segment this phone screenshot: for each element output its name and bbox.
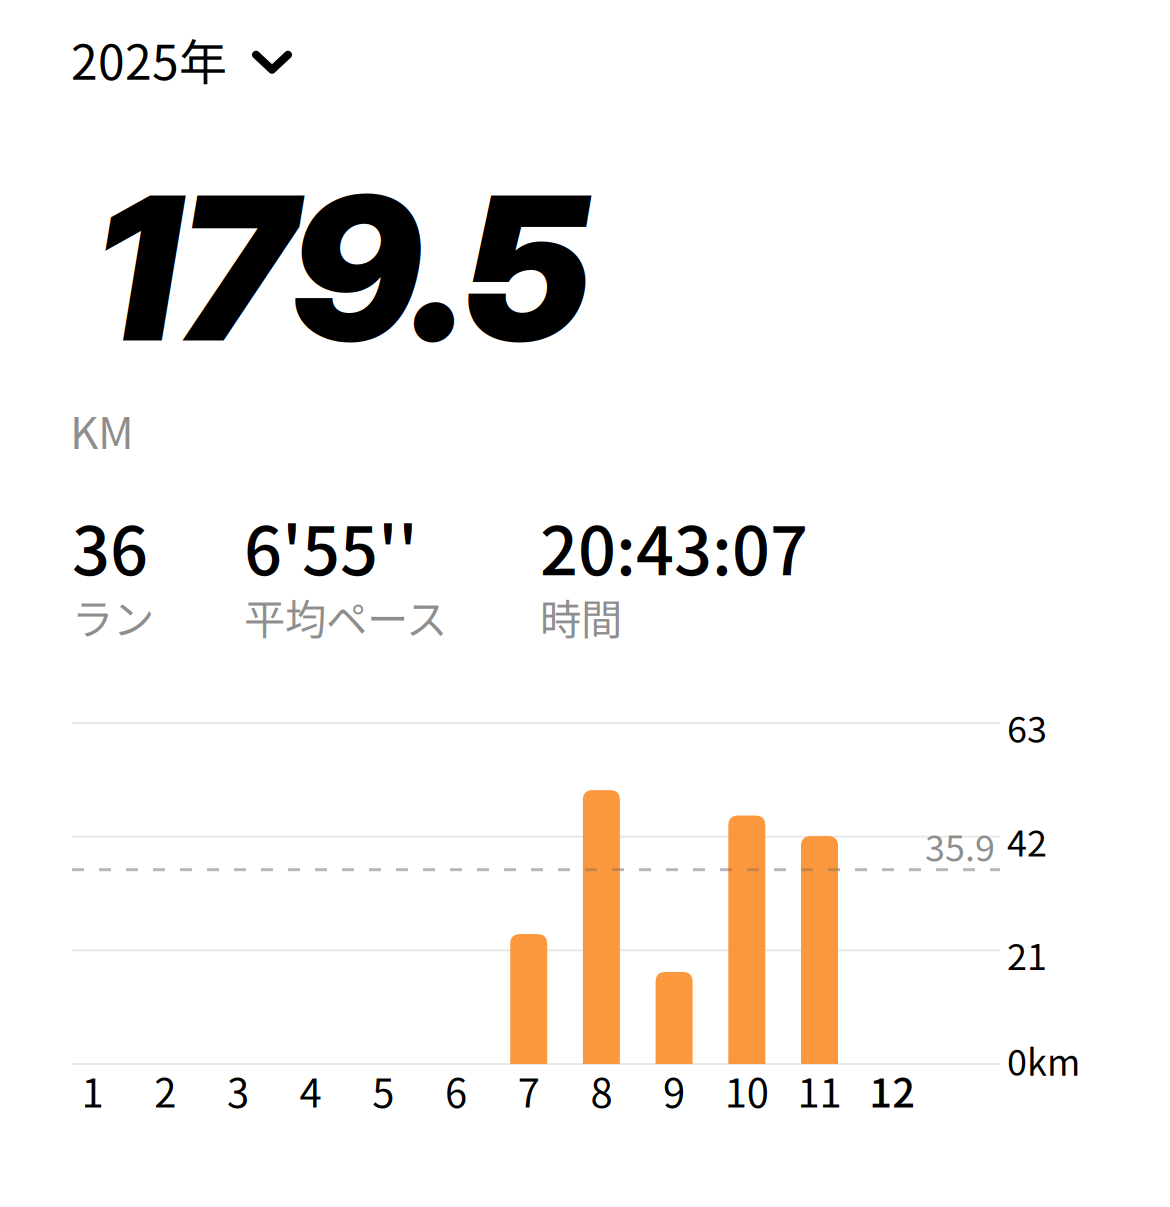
staticText: 63 (1007, 701, 1047, 753)
staticText: 2025年 (71, 24, 227, 93)
staticText: 5 (372, 1061, 394, 1119)
staticText: 7 (518, 1061, 540, 1119)
staticText: 1 (81, 1061, 103, 1119)
staticText: 36 (72, 498, 148, 594)
staticText: 3 (227, 1061, 249, 1119)
staticText: 0km (1007, 1034, 1080, 1086)
staticText: 11 (797, 1061, 841, 1119)
staticText: 4 (300, 1061, 322, 1119)
staticText: 6'55'' (244, 498, 418, 594)
staticText: 21 (1007, 928, 1047, 980)
staticText: 6 (445, 1061, 467, 1119)
staticText: 12 (869, 1061, 915, 1119)
staticText: 平均ペース (244, 586, 447, 646)
staticText: 8 (590, 1061, 612, 1119)
staticText: 9 (663, 1061, 685, 1119)
staticText: 20:43:07 (540, 498, 808, 594)
staticText: ラン (72, 586, 154, 646)
staticText: KM (70, 398, 134, 462)
staticText: 35.9 (925, 820, 995, 872)
staticText: 2 (154, 1061, 176, 1119)
staticText: 時間 (540, 586, 622, 646)
staticText: 10 (725, 1061, 769, 1119)
button[interactable]: 2025年 (71, 24, 293, 93)
staticText: 179.5 (96, 148, 589, 388)
staticText: 42 (1007, 815, 1047, 867)
